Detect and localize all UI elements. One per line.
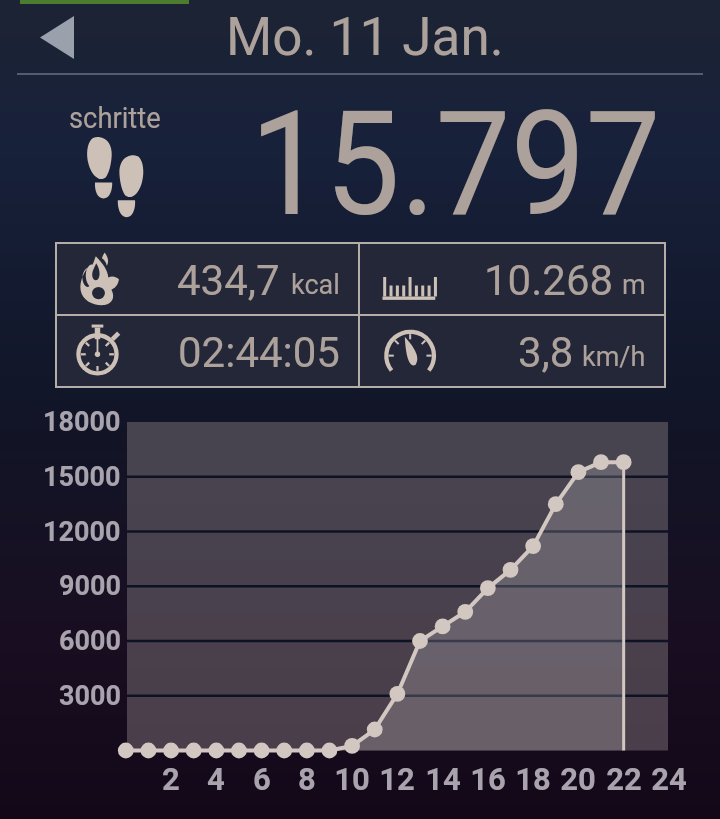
staticText: 22	[606, 761, 642, 797]
staticText: 10.268	[484, 256, 614, 305]
staticText: 20	[560, 761, 596, 797]
staticText: 3,8	[518, 328, 574, 377]
staticText: Mo. 11 Jan.	[226, 6, 504, 68]
staticText: 24	[651, 761, 687, 797]
staticText: 8	[298, 761, 316, 797]
button[interactable]: 3,8	[360, 316, 664, 386]
staticText: km/h	[582, 341, 646, 373]
staticText: schritte	[69, 100, 161, 135]
staticText: 15000	[43, 461, 121, 493]
staticText: m	[622, 269, 646, 301]
button[interactable]: 10.268	[360, 244, 664, 314]
staticText: 16	[470, 761, 506, 797]
staticText: 6	[253, 761, 271, 797]
staticText: 2	[162, 761, 180, 797]
staticText: 15.797	[250, 80, 661, 240]
staticText: 18000	[43, 406, 121, 438]
button[interactable]: Back	[17, 9, 96, 66]
staticText: 02:44:05	[178, 328, 340, 377]
staticText: 10	[334, 761, 370, 797]
staticText: 434,7	[177, 256, 280, 305]
staticText: 4	[207, 761, 225, 797]
staticText: kcal	[291, 269, 340, 301]
staticText: 9000	[59, 570, 121, 602]
staticText: 12	[379, 761, 415, 797]
button[interactable]: 02:44:05	[57, 316, 358, 386]
staticText: 14	[425, 761, 461, 797]
staticText: 12000	[43, 516, 121, 548]
staticText: 18	[515, 761, 551, 797]
button[interactable]: 434,7	[57, 244, 358, 314]
staticText: 6000	[59, 625, 121, 657]
staticText: 3000	[59, 680, 121, 712]
